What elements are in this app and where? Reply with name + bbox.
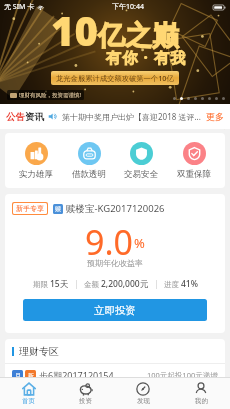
staticText: 金额 (84, 280, 99, 289)
staticText: 有你 · 有我 (106, 47, 187, 67)
staticText: 15天 (50, 278, 69, 290)
staticText: 理财专区 (19, 345, 59, 358)
staticText: 理财有风险，投资需谨慎! (19, 91, 81, 99)
staticText: 我的 (195, 397, 208, 405)
staticText: 首页 (22, 397, 35, 405)
staticText: 步6期2017120154 (39, 369, 114, 381)
button[interactable]: 借款透明 (68, 139, 110, 183)
staticText: 100元起投100元递增 (147, 370, 218, 380)
button[interactable]: 双重保障 (173, 139, 215, 183)
staticText: % (134, 234, 145, 252)
staticText: 下午10:44 (112, 2, 144, 12)
staticText: 更多 (206, 111, 224, 122)
staticText: 亿之巅 (98, 19, 179, 53)
button[interactable]: 投资 (57, 378, 114, 409)
button[interactable]: 发现 (114, 378, 172, 409)
staticText: 赎 (55, 205, 61, 213)
staticText: 新 (28, 372, 34, 380)
staticText: 资讯 (25, 111, 44, 123)
staticText: 赎楼宝-KG2017120026 (66, 202, 165, 215)
staticText: 预期年化收益率 (12, 258, 218, 268)
staticText: 月 (15, 372, 21, 380)
staticText: 立即投资 (94, 304, 136, 317)
staticText: 实力雄厚 (19, 169, 53, 180)
staticText: 41% (181, 278, 198, 290)
staticText: 10 (51, 3, 98, 57)
staticText: 交易安全 (124, 169, 158, 180)
staticText: 新手专享 (16, 204, 44, 213)
staticText: 公告 (6, 111, 25, 123)
staticText: 期限 (33, 280, 48, 289)
staticText: 投资 (79, 397, 92, 405)
staticText: 2,200,000元 (101, 278, 149, 290)
button[interactable]: 实力雄厚 (15, 139, 57, 183)
staticText: 第十期中奖用户出炉【喜迎2018 送评... (62, 111, 203, 122)
button[interactable]: 我的 (172, 378, 230, 409)
staticText: 双重保障 (177, 169, 211, 180)
button[interactable]: 立即投资 (23, 299, 207, 321)
button[interactable]: 公告 (6, 104, 224, 129)
staticText: 无 SIM 卡 (4, 2, 35, 12)
button[interactable]: 交易安全 (120, 139, 162, 183)
button[interactable]: 无 SIM 卡 (0, 0, 230, 104)
staticText: 发现 (137, 397, 150, 405)
staticText: 9.0 (85, 219, 134, 257)
staticText: 进度 (164, 280, 179, 289)
button[interactable]: 首页 (0, 378, 57, 409)
staticText: 借款透明 (72, 169, 106, 180)
staticText: 龙光金服累计成交额攻破第一个10亿 (56, 73, 174, 83)
